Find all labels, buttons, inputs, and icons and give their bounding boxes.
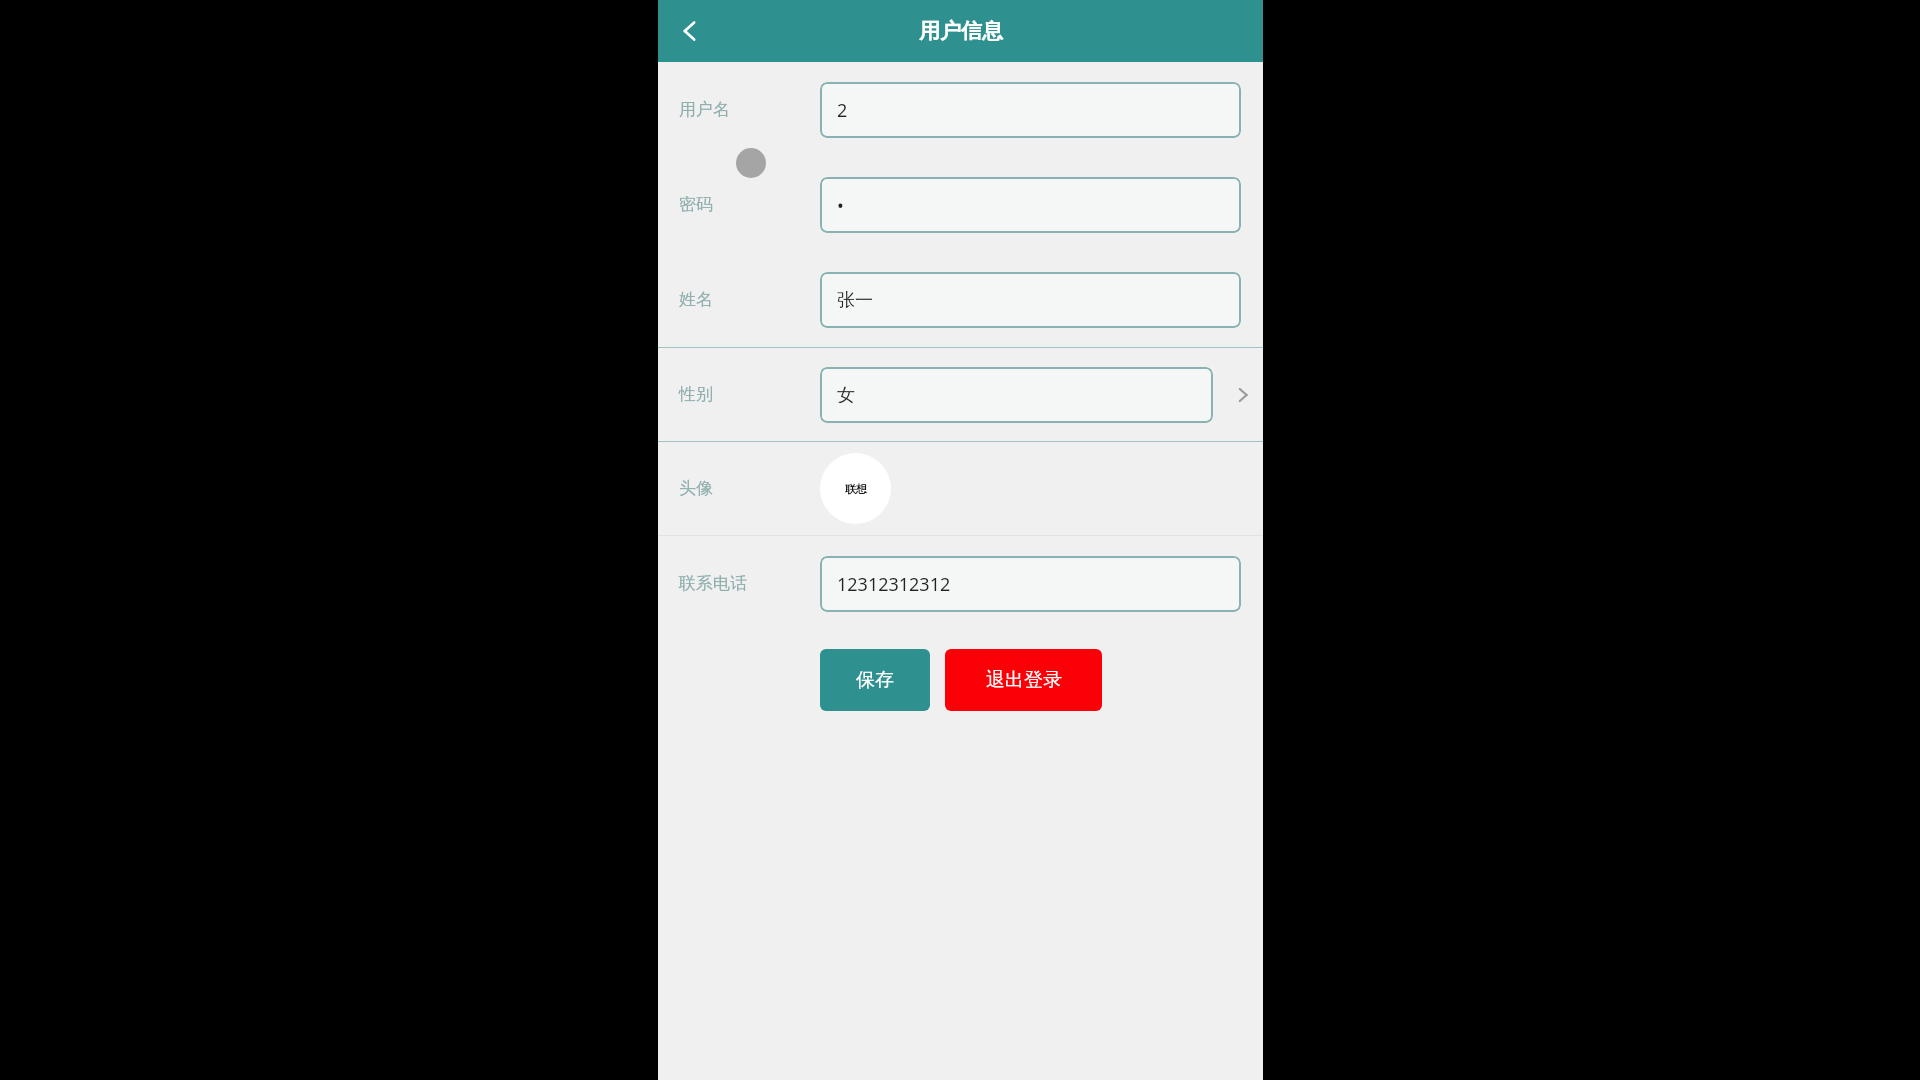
- staticText: 12312312312: [837, 572, 951, 597]
- button[interactable]: 2: [820, 82, 1241, 138]
- staticText: 用户名: [679, 99, 730, 120]
- button[interactable]: 退出登录: [945, 649, 1102, 711]
- staticText: 保存: [856, 668, 894, 692]
- staticText: 用户信息: [919, 18, 1003, 44]
- button[interactable]: 头像: [820, 453, 891, 524]
- button[interactable]: Back: [664, 5, 716, 57]
- staticText: 张一: [837, 289, 873, 312]
- staticText: 性别: [679, 384, 713, 405]
- staticText: 姓名: [679, 289, 713, 310]
- button[interactable]: •: [820, 177, 1241, 233]
- staticText: 2: [837, 98, 848, 123]
- staticText: •: [837, 193, 844, 218]
- staticText: 女: [837, 384, 855, 407]
- staticText: 退出登录: [986, 668, 1062, 692]
- staticText: 联想: [845, 482, 867, 496]
- staticText: 联系电话: [679, 573, 747, 594]
- button[interactable]: 女: [820, 367, 1213, 423]
- staticText: 头像: [679, 478, 713, 499]
- button[interactable]: 12312312312: [820, 556, 1241, 612]
- button[interactable]: 保存: [820, 649, 930, 711]
- staticText: 密码: [679, 194, 713, 215]
- button[interactable]: 张一: [820, 272, 1241, 328]
- button[interactable]: 性别: [658, 348, 1263, 441]
